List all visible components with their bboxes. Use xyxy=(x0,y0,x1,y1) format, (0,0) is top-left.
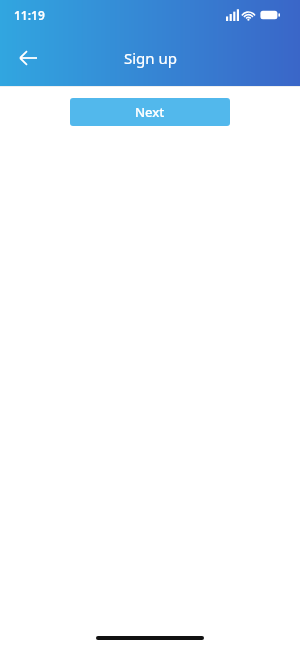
staticText: 11:19 xyxy=(14,7,45,23)
staticText: Next xyxy=(135,103,165,121)
staticText: Sign up xyxy=(124,48,177,68)
button[interactable]: Back xyxy=(8,38,48,78)
button[interactable]: Next xyxy=(70,98,230,126)
